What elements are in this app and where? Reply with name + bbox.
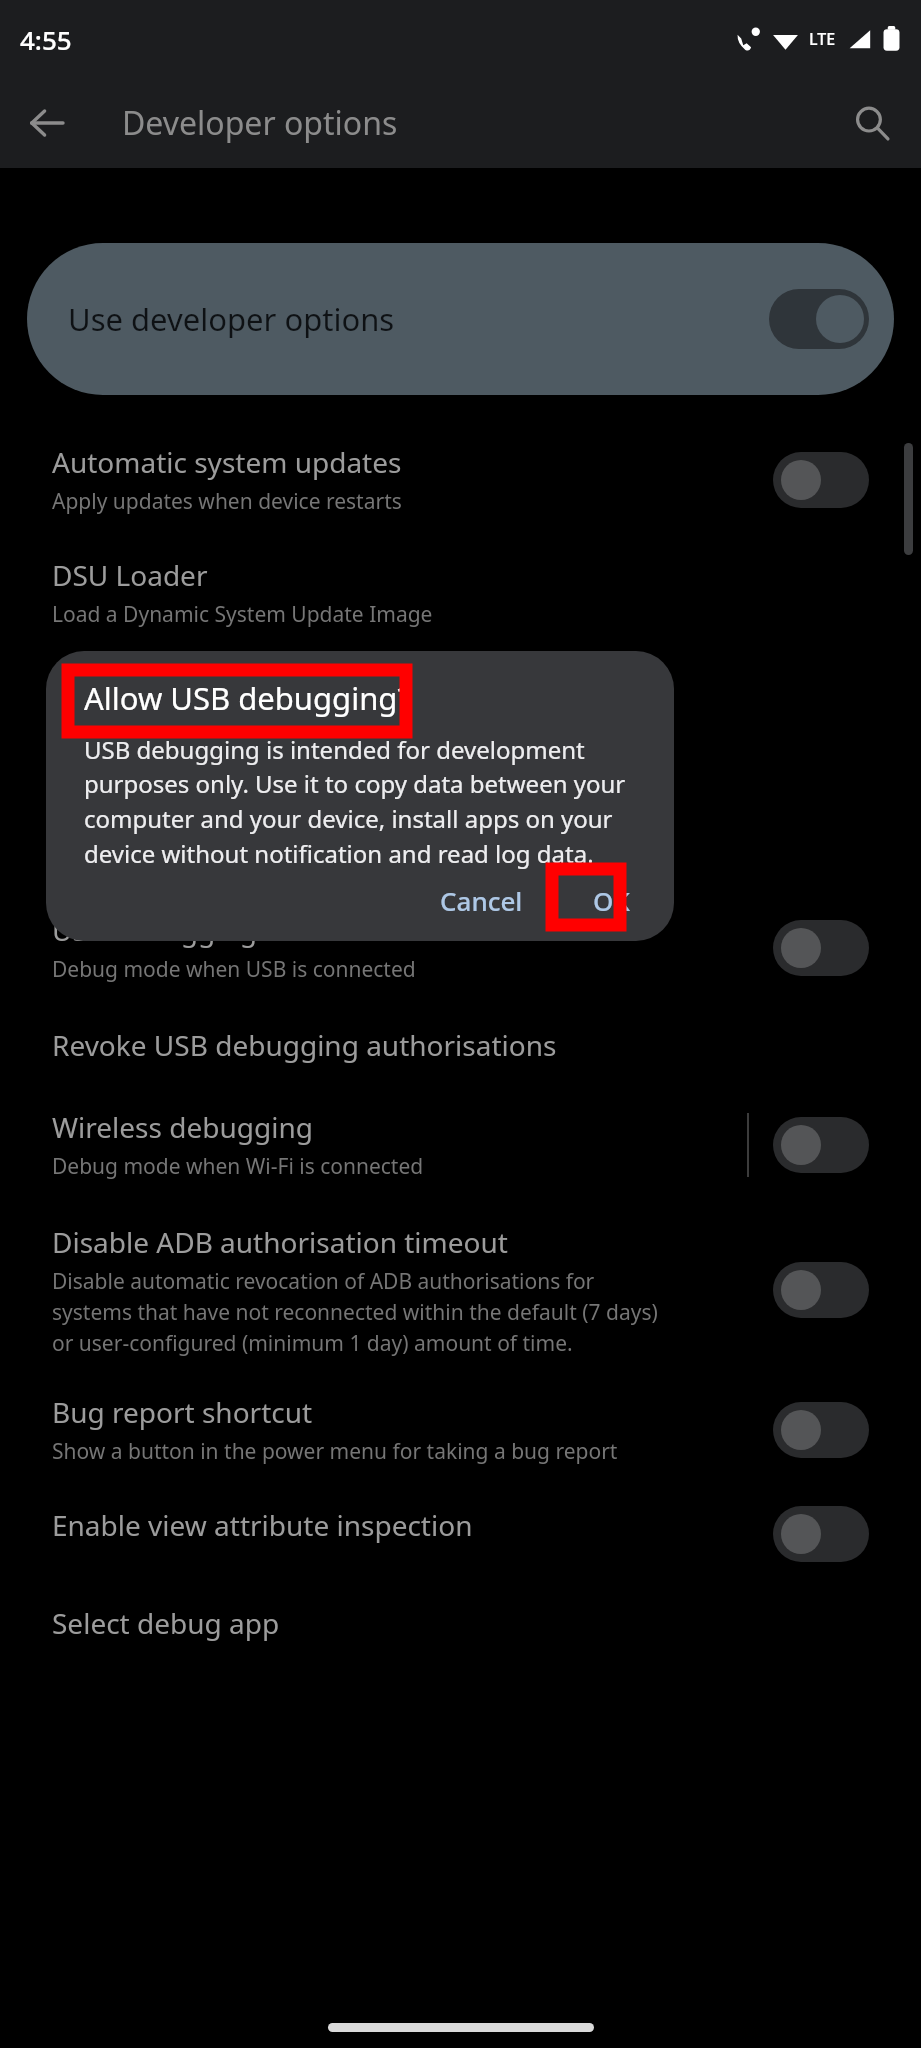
button[interactable]: Toggle (773, 920, 869, 976)
staticText: Enable view attribute inspection (52, 1506, 473, 1544)
staticText: Wireless debugging (52, 1108, 313, 1146)
button[interactable]: DSU Loader (0, 550, 921, 635)
button[interactable]: Toggle (773, 1262, 869, 1318)
button[interactable]: Use developer options (27, 243, 894, 395)
staticText: Use developer options (68, 298, 395, 340)
staticText: Debug mode when Wi-Fi is connected (52, 1152, 424, 1181)
staticText: Show a button in the power menu for taki… (52, 1437, 618, 1466)
button[interactable]: Search (839, 90, 905, 156)
staticText: LTE (809, 28, 836, 50)
staticText: USB debugging is intended for developmen… (84, 733, 650, 871)
staticText: Debug mode when USB is connected (52, 955, 416, 984)
button[interactable]: USB debugging (0, 905, 921, 990)
button[interactable]: Back (14, 90, 80, 156)
button[interactable]: Enable view attribute inspection (0, 1500, 921, 1568)
button[interactable]: Debug (0, 827, 921, 877)
button[interactable]: Select debug app (0, 1598, 921, 1648)
button[interactable]: Disable ADB authorisation timeout (0, 1217, 921, 1363)
staticText: Disable ADB authorisation timeout (52, 1223, 508, 1261)
button[interactable]: Bug report shortcut (0, 1387, 921, 1472)
staticText: Cancel (440, 883, 523, 913)
button[interactable]: Quick settings developer tiles (0, 747, 921, 797)
staticText: 4:55 (20, 22, 72, 57)
staticText: Developer options (122, 101, 398, 145)
staticText: Automatic system updates (52, 443, 402, 481)
staticText: Select debug app (52, 1604, 280, 1642)
staticText: Debug (52, 833, 140, 871)
button[interactable]: Revoke USB debugging authorisations (0, 1020, 921, 1070)
staticText: DSU Loader (52, 556, 208, 594)
staticText: Revoke USB debugging authorisations (52, 1026, 557, 1064)
staticText: System UI demo mode (52, 671, 352, 709)
button[interactable]: System UI demo mode (0, 665, 921, 715)
staticText: Apply updates when device restarts (52, 487, 402, 516)
button[interactable]: Toggle (773, 1117, 869, 1173)
staticText: Disable automatic revocation of ADB auth… (52, 1267, 673, 1357)
button[interactable]: OK (573, 871, 650, 925)
staticText: Load a Dynamic System Update Image (52, 600, 433, 629)
button[interactable]: Automatic system updates (0, 437, 921, 522)
button[interactable]: Wireless debugging (0, 1102, 921, 1187)
staticText: Bug report shortcut (52, 1393, 313, 1431)
staticText: OK (593, 883, 630, 913)
staticText: USB debugging (52, 911, 258, 949)
staticText: Allow USB debugging? (84, 677, 411, 719)
button[interactable]: Toggle (773, 1506, 869, 1562)
button[interactable]: Toggle (773, 1402, 869, 1458)
staticText: Quick settings developer tiles (52, 753, 439, 791)
button[interactable]: Toggle (773, 452, 869, 508)
button[interactable]: Cancel (420, 871, 543, 925)
